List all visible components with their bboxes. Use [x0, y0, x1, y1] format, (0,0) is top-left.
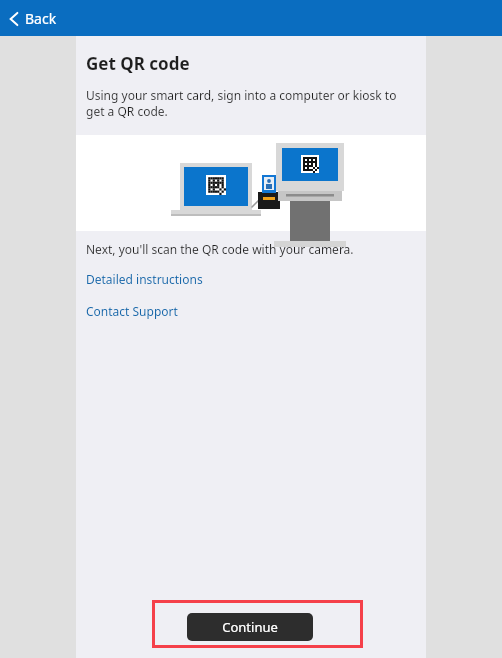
staticText: Detailed instructions: [86, 271, 203, 287]
button[interactable]: Continue: [187, 613, 313, 641]
staticText: Get QR code: [86, 52, 190, 75]
staticText: Contact Support: [86, 303, 178, 319]
button[interactable]: Back: [0, 5, 67, 32]
staticText: Next, you'll scan the QR code with your …: [86, 241, 354, 257]
button[interactable]: Contact Support: [76, 301, 188, 321]
staticText: Back: [25, 9, 57, 28]
staticText: Continue: [222, 618, 278, 636]
button[interactable]: Detailed instructions: [76, 269, 213, 289]
staticText: Using your smart card, sign into a compu…: [86, 87, 412, 119]
